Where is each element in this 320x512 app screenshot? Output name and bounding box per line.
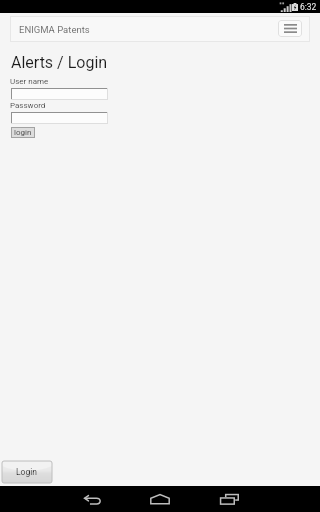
staticText: 6:32: [300, 2, 317, 12]
button[interactable]: Recent apps: [209, 486, 249, 512]
staticText: Password: [10, 101, 46, 110]
button[interactable]: User name field: [11, 88, 108, 100]
staticText: ENIGMA Patents: [19, 24, 90, 35]
button[interactable]: Home: [140, 486, 180, 512]
staticText: login: [14, 128, 32, 137]
staticText: User name: [10, 77, 49, 86]
staticText: Login: [16, 467, 37, 477]
button[interactable]: Password field: [11, 112, 108, 124]
button[interactable]: login: [11, 127, 35, 138]
button[interactable]: Login: [2, 461, 52, 483]
button[interactable]: Back: [72, 486, 112, 512]
staticText: Alerts / Login: [11, 53, 108, 72]
button[interactable]: Menu: [278, 20, 302, 37]
